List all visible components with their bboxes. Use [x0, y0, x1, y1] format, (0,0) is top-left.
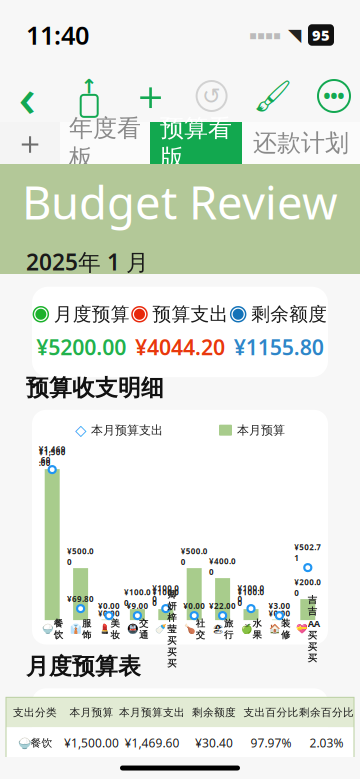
staticText: 吉吉AA买买买	[308, 594, 320, 664]
staticText: 2025年 1 月	[26, 247, 149, 277]
staticText: ¥0.00	[268, 608, 290, 619]
staticText: 水果	[252, 618, 261, 640]
staticText: 11:40	[26, 18, 89, 52]
staticText: 🍚	[42, 624, 54, 634]
staticText: ¥3.00	[268, 600, 290, 611]
staticText: 剩余百分比	[299, 706, 354, 719]
staticText: ¥100.00	[124, 587, 151, 608]
staticText: 🍚餐饮	[17, 736, 52, 749]
staticText: ＋	[130, 71, 170, 120]
staticText: 2.03%	[309, 735, 343, 751]
staticText: Budget Review	[22, 171, 338, 233]
button[interactable]: Add	[128, 74, 172, 118]
staticText: ¥100.00	[237, 583, 264, 604]
staticText: ▪▪▪▪	[249, 28, 281, 42]
staticText: 预算收支明细	[26, 374, 164, 402]
staticText: ‹	[18, 61, 35, 131]
button[interactable]: Back	[4, 74, 50, 118]
staticText: ¥100.00	[237, 587, 264, 608]
staticText: 餐饮	[54, 618, 63, 640]
staticText: ¥1,469.60	[124, 735, 179, 751]
staticText: 95	[312, 25, 330, 45]
button[interactable]: Brush	[251, 74, 295, 118]
staticText: ¥100.00	[152, 587, 179, 608]
staticText: 🍼	[155, 624, 167, 634]
staticText: ¥0.00	[98, 600, 120, 611]
staticText: ＋	[14, 123, 46, 163]
staticText: 👔	[70, 624, 82, 634]
staticText: 本月预算	[237, 423, 285, 437]
staticText: 社交	[196, 618, 205, 640]
staticText: ¥1,500.00	[39, 447, 66, 468]
button[interactable]: 年度看板	[60, 122, 150, 164]
staticText: ¥500.00	[181, 546, 208, 567]
staticText: 💄	[98, 624, 110, 634]
staticText: 🚇	[127, 624, 139, 634]
staticText: 🖌	[253, 78, 292, 113]
staticText: 美妆	[110, 618, 119, 640]
staticText: 剩余额度	[251, 303, 327, 326]
staticText: 预算支出	[152, 303, 228, 326]
staticText: ¥1,500.00	[64, 735, 119, 751]
staticText: ¥500.00	[67, 546, 94, 567]
staticText: ¥9.00	[126, 600, 148, 611]
staticText: 交通	[139, 618, 148, 640]
staticText: 年度看板	[69, 113, 141, 172]
button[interactable]: More	[312, 74, 356, 118]
staticText: ¥69.80	[133, 766, 171, 779]
staticText: 月度预算表	[26, 652, 141, 680]
staticText: 💝	[296, 624, 308, 634]
staticText: 支出百分比	[243, 706, 298, 719]
staticText: ↺	[202, 83, 221, 109]
staticText: 卿妍梓莹买买买	[167, 589, 176, 669]
button[interactable]: Undo	[190, 74, 234, 118]
staticText: 本月预算	[69, 706, 113, 719]
staticText: 预算看版	[160, 113, 232, 172]
staticText: ↑	[81, 75, 98, 98]
staticText: ◇	[75, 422, 86, 438]
staticText: ¥1155.80	[234, 333, 324, 361]
staticText: ¥22.00	[209, 600, 236, 611]
staticText: 支出分类	[13, 706, 57, 719]
button[interactable]: 还款计划	[242, 122, 360, 164]
staticText: ¥4044.20	[135, 333, 225, 361]
staticText: 97.97%	[250, 735, 291, 751]
staticText: ¥69.80	[67, 593, 94, 604]
staticText: ¥400.00	[209, 556, 236, 577]
staticText: 🏠	[269, 624, 281, 634]
staticText: 旅行	[224, 618, 233, 640]
staticText: ¥430.20	[191, 766, 236, 779]
staticText: 服饰	[82, 618, 91, 640]
staticText: 🏖	[212, 624, 224, 634]
button[interactable]: 预算看版	[150, 122, 242, 164]
staticText: 本月预算支出	[91, 423, 163, 437]
staticText: ¥5200.00	[36, 333, 126, 361]
staticText: 月度预算	[54, 303, 130, 326]
staticText: 剩余额度	[192, 706, 236, 719]
staticText: ¥30.40	[195, 735, 233, 751]
staticText: •••	[323, 84, 344, 107]
staticText: 🍗	[184, 624, 196, 634]
button[interactable]: 🍚餐饮	[6, 727, 354, 758]
staticText: ¥0.00	[183, 600, 205, 611]
button[interactable]: New sheet	[0, 122, 60, 164]
staticText: ◥	[288, 25, 301, 45]
staticText: 还款计划	[253, 128, 349, 158]
staticText: ¥100.00	[152, 583, 179, 604]
button[interactable]: Share	[67, 74, 111, 118]
staticText: 🍏	[240, 624, 252, 634]
button[interactable]: 🛍购物	[6, 758, 354, 779]
staticText: ¥200.00	[294, 577, 321, 598]
staticText: ¥0.00	[98, 608, 120, 619]
staticText: ¥502.71	[294, 542, 321, 563]
staticText: 装修	[281, 618, 290, 640]
staticText: 本月预算支出	[119, 706, 185, 719]
staticText: ¥1,469.60	[39, 444, 66, 465]
